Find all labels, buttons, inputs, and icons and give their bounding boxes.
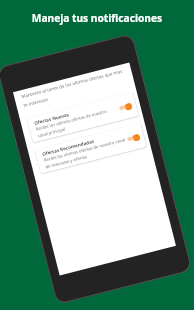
button[interactable]: Ofertas Recomendadas	[35, 123, 147, 174]
staticText: Recibe los ultimos ofertas de nuestro ca…	[35, 106, 120, 138]
staticText: Ofertas Nuevas	[33, 111, 70, 126]
staticText: Ofertas Recomendadas	[41, 138, 95, 157]
button[interactable]	[126, 132, 141, 143]
staticText: Mantente al tanto de los ultimos ofertas…	[20, 67, 129, 108]
button[interactable]	[118, 101, 133, 112]
staticText: Recibe las ultimas ofertas de nuestro ca…	[43, 137, 128, 169]
staticText: Maneja tus notificaciones	[0, 11, 194, 25]
button[interactable]: Ofertas Nuevas	[27, 92, 139, 143]
